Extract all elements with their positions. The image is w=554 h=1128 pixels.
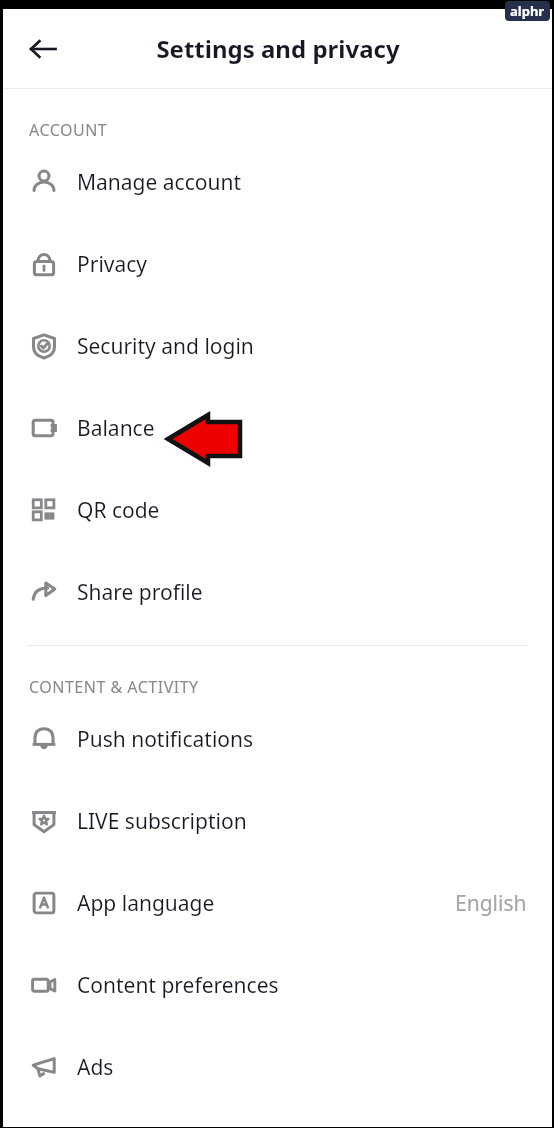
staticText: Content preferences <box>77 971 279 1000</box>
button[interactable]: Manage account <box>3 141 552 223</box>
button[interactable]: Share profile <box>3 551 552 633</box>
staticText: Ads <box>77 1053 114 1082</box>
button[interactable]: Content preferences <box>3 944 552 1026</box>
button[interactable]: Privacy <box>3 223 552 305</box>
staticText: App language <box>77 889 215 918</box>
staticText: Push notifications <box>77 725 254 754</box>
staticText: Balance <box>77 414 155 443</box>
button[interactable]: App language <box>3 862 552 944</box>
staticText: Share profile <box>77 578 203 607</box>
staticText: QR code <box>77 496 160 525</box>
button[interactable]: QR code <box>3 469 552 551</box>
staticText: LIVE subscription <box>77 807 247 836</box>
staticText: CONTENT & ACTIVITY <box>29 676 199 698</box>
staticText: ACCOUNT <box>29 119 108 141</box>
button[interactable]: LIVE subscription <box>3 780 552 862</box>
button[interactable]: Back <box>19 25 67 73</box>
staticText: English <box>455 889 527 918</box>
staticText: Privacy <box>77 250 148 279</box>
staticText: Settings and privacy <box>156 32 400 65</box>
staticText: alphr <box>510 2 545 20</box>
button[interactable]: Security and login <box>3 305 552 387</box>
button[interactable]: Balance <box>3 387 552 469</box>
button[interactable]: Push notifications <box>3 698 552 780</box>
button[interactable]: Ads <box>3 1026 552 1108</box>
staticText: Manage account <box>77 168 241 197</box>
staticText: Security and login <box>77 332 254 361</box>
